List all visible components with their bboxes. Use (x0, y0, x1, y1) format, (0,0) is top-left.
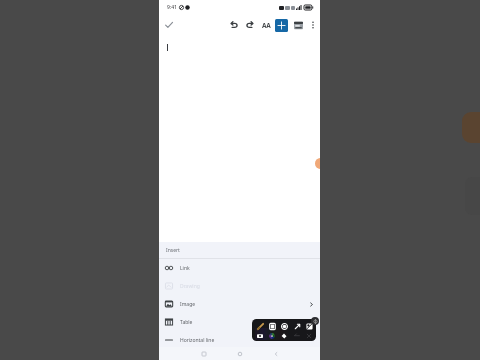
button[interactable]: Undo (226, 17, 242, 33)
button[interactable]: Horizontal line (159, 331, 320, 349)
button[interactable]: Eraser (279, 331, 289, 341)
button[interactable]: Colour (267, 331, 277, 341)
button[interactable]: Document outline (290, 17, 306, 33)
button[interactable]: Link (159, 259, 320, 277)
button[interactable]: Arrow (292, 321, 302, 331)
button[interactable]: Circle (279, 321, 289, 331)
staticText: Image (180, 301, 196, 308)
button[interactable]: Home (233, 347, 246, 360)
button[interactable]: Recent apps (197, 347, 210, 360)
staticText: Insert (166, 247, 180, 254)
button[interactable]: Back (269, 347, 282, 360)
button[interactable]: Camera (255, 331, 265, 341)
staticText: Horizontal line (180, 337, 215, 344)
button[interactable]: Pen (255, 321, 265, 331)
staticText: Drawing (180, 283, 200, 290)
button[interactable]: Move toolbar (311, 317, 319, 325)
button[interactable]: Rectangle (267, 321, 277, 331)
button[interactable]: Screen recorder bubble (315, 158, 320, 169)
button[interactable]: Redo (242, 17, 258, 33)
button[interactable]: More options (305, 17, 321, 33)
button[interactable]: Text formatting (258, 17, 274, 33)
button[interactable]: Insert (275, 19, 288, 32)
staticText: Table (180, 319, 193, 326)
staticText: Link (180, 265, 190, 272)
button[interactable]: Screen recorder drawing tools (252, 319, 316, 341)
button[interactable]: Table (159, 313, 320, 331)
staticText: 9:41 (167, 4, 177, 11)
button[interactable]: Magic select (304, 321, 314, 331)
staticText: AA (262, 21, 271, 30)
button[interactable]: Image (159, 295, 320, 313)
button[interactable]: Undo annotation (292, 331, 302, 341)
button[interactable]: Done (161, 17, 177, 33)
button[interactable]: Close (304, 331, 314, 341)
